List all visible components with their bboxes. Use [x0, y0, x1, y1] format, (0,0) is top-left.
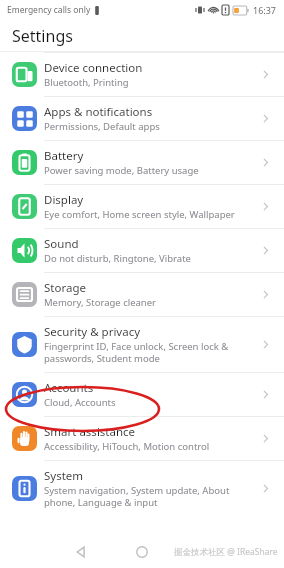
button[interactable]: Accounts: [0, 373, 284, 416]
staticText: Accessibility, HiTouch, Motion control: [44, 440, 210, 453]
button[interactable]: Apps & notifications: [0, 97, 284, 140]
button[interactable]: Device connection: [0, 53, 284, 96]
staticText: 16:37: [253, 4, 277, 16]
staticText: Do not disturb, Ringtone, Vibrate: [44, 252, 191, 265]
staticText: Accounts: [44, 380, 94, 396]
button[interactable]: Sound: [0, 229, 284, 272]
staticText: Power saving mode, Battery usage: [44, 164, 199, 177]
staticText: 掘金技术社区 @ IReaShare: [174, 546, 278, 558]
staticText: Eye comfort, Home screen style, Wallpape…: [44, 208, 235, 221]
staticText: Emergency calls only: [7, 4, 91, 16]
staticText: Storage: [44, 280, 86, 296]
button[interactable]: Storage: [0, 273, 284, 316]
button[interactable]: Home: [131, 541, 153, 563]
button[interactable]: Display: [0, 185, 284, 228]
staticText: Memory, Storage cleaner: [44, 296, 156, 309]
staticText: Permissions, Default apps: [44, 120, 160, 133]
staticText: Smart assistance: [44, 424, 136, 440]
staticText: Display: [44, 192, 84, 208]
staticText: Settings: [12, 25, 73, 47]
staticText: Sound: [44, 236, 79, 252]
staticText: Apps & notifications: [44, 104, 153, 120]
staticText: Bluetooth, Printing: [44, 76, 129, 89]
staticText: Fingerprint ID, Face unlock, Screen lock…: [44, 340, 229, 365]
staticText: Battery: [44, 148, 84, 164]
button[interactable]: Smart assistance: [0, 417, 284, 460]
staticText: Cloud, Accounts: [44, 396, 116, 409]
button[interactable]: Security & privacy: [0, 317, 284, 372]
button[interactable]: Back: [70, 541, 92, 563]
button[interactable]: Battery: [0, 141, 284, 184]
staticText: System: [44, 468, 84, 484]
staticText: Security & privacy: [44, 324, 141, 340]
staticText: System navigation, System update, About …: [44, 484, 230, 509]
button[interactable]: System: [0, 461, 284, 516]
staticText: Device connection: [44, 60, 143, 76]
